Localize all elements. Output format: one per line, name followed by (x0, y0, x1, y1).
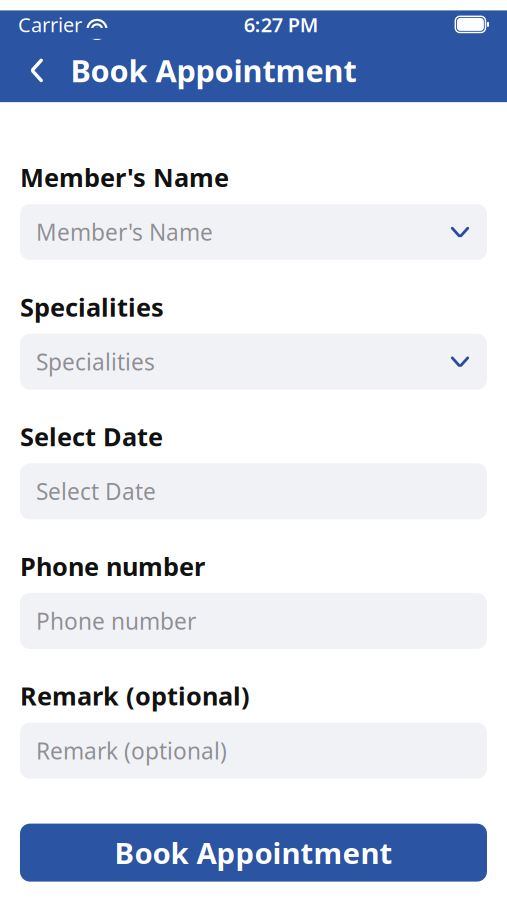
staticText: Book Appointment (70, 50, 356, 91)
staticText: Phone number (36, 606, 196, 636)
staticText: Remark (optional) (20, 679, 250, 713)
staticText: Member's Name (20, 160, 229, 194)
staticText: Phone number (20, 549, 205, 583)
button[interactable]: Back (14, 47, 60, 93)
staticText: Select Date (36, 476, 156, 506)
button[interactable]: Specialities (20, 334, 487, 390)
staticText: Select Date (20, 420, 163, 453)
button[interactable]: Select Date (20, 463, 487, 519)
staticText: Remark (optional) (36, 736, 227, 766)
button[interactable]: Book Appointment (20, 824, 487, 882)
staticText: Specialities (36, 347, 155, 377)
button[interactable]: Member's Name (20, 204, 487, 260)
button[interactable]: Remark (optional) (20, 723, 487, 779)
staticText: Carrier (18, 11, 82, 38)
button[interactable]: Phone number (20, 593, 487, 649)
staticText: Specialities (20, 290, 164, 324)
staticText: 6:27 PM (244, 11, 319, 38)
staticText: Member's Name (36, 217, 213, 247)
staticText: Book Appointment (114, 833, 392, 872)
